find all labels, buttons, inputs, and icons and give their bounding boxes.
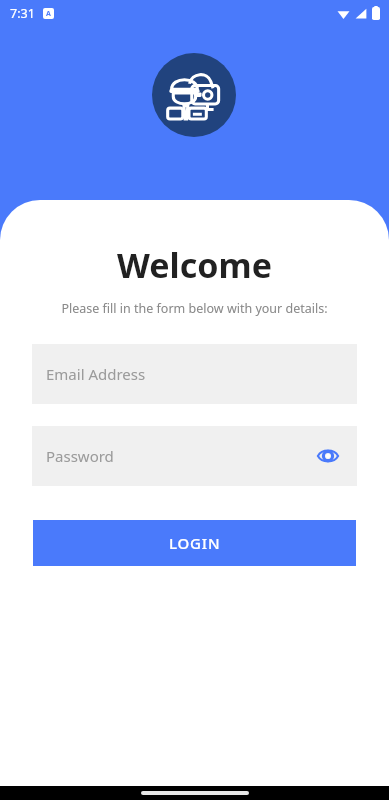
staticText: A (46, 9, 51, 19)
button[interactable]: LOGIN (33, 520, 356, 566)
staticText: Email Address (46, 364, 146, 384)
staticText: LOGIN (169, 533, 221, 553)
staticText: Welcome (117, 242, 272, 288)
staticText: 7:31 (10, 5, 35, 22)
button[interactable]: Show password (313, 441, 343, 471)
button[interactable]: Email Address (32, 344, 357, 404)
staticText: Please fill in the form below with your … (61, 300, 328, 317)
staticText: Password (46, 446, 114, 466)
button[interactable]: Password (32, 426, 357, 486)
